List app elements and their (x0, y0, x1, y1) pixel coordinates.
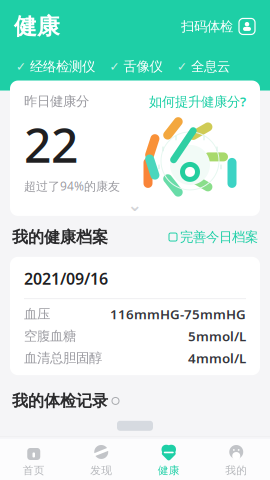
button[interactable]: ✓ (109, 58, 162, 75)
staticText: ⌄ (127, 195, 142, 215)
staticText: 超过了94%的康友 (24, 178, 120, 194)
staticText: 5mmol/L (188, 327, 246, 345)
button[interactable]: 我的 (202, 443, 270, 477)
button[interactable]: 发现 (67, 443, 135, 477)
staticText: 如何提升健康分? (149, 92, 246, 110)
staticText: 血压 (24, 306, 50, 322)
button[interactable]: 健康 (135, 443, 202, 477)
staticText: 血清总胆固醇 (24, 350, 102, 366)
staticText: 22 (24, 112, 78, 176)
button[interactable]: 如何提升健康分? (149, 92, 246, 110)
staticText: ✓ (177, 60, 187, 73)
button[interactable]: 完善今日档案 (169, 229, 258, 245)
staticText: ✓ (16, 60, 26, 73)
staticText: 我的体检记录 (12, 391, 108, 411)
button[interactable]: 首页 (0, 443, 67, 477)
button[interactable]: ✓ (16, 58, 95, 75)
staticText: 全息云 (191, 58, 230, 75)
staticText: 昨日健康分 (24, 93, 89, 110)
staticText: 我的 (225, 464, 247, 477)
staticText: 116mmHG-75mmHG (110, 305, 246, 323)
staticText: 空腹血糖 (24, 328, 76, 344)
button[interactable]: 展开 (10, 194, 260, 216)
staticText: ✓ (109, 60, 119, 73)
button[interactable]: 扫码体检 (181, 17, 256, 35)
staticText: 首页 (23, 464, 45, 477)
staticText: 发现 (90, 464, 112, 477)
staticText: 经络检测仪 (30, 58, 95, 75)
staticText: 我的健康档案 (12, 227, 108, 247)
staticText: 扫码体检 (181, 18, 233, 35)
staticText: 舌像仪 (123, 58, 162, 75)
staticText: 4mmol/L (188, 349, 246, 367)
staticText: 完善今日档案 (180, 229, 258, 245)
staticText: 2021/09/16 (24, 268, 108, 289)
staticText: 健康 (158, 464, 180, 477)
button[interactable]: ✓ (177, 58, 230, 75)
staticText: 健康 (14, 12, 60, 40)
